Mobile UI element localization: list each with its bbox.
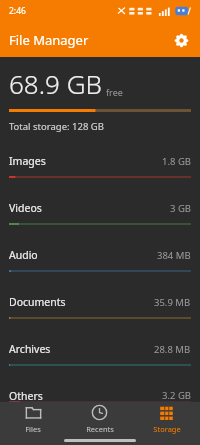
staticText: Audio <box>9 248 38 262</box>
staticText: 35.9 MB <box>154 296 191 309</box>
button[interactable]: Others <box>0 378 200 402</box>
staticText: 1.8 GB <box>162 155 191 168</box>
button[interactable]: Images <box>0 143 200 190</box>
staticText: Storage <box>153 424 181 434</box>
button[interactable]: Recents <box>66 402 133 435</box>
staticText: Documents <box>9 295 66 309</box>
staticText: Others <box>9 389 43 402</box>
staticText: Recents <box>86 424 114 434</box>
staticText: 3.2 GB <box>162 389 191 402</box>
staticText: Archives <box>9 342 51 356</box>
button[interactable]: Storage <box>133 402 200 435</box>
button[interactable]: Archives <box>0 331 200 378</box>
button[interactable]: Settings <box>170 29 192 51</box>
button[interactable]: Videos <box>0 190 200 237</box>
staticText: 68.9 GB <box>9 66 102 101</box>
staticText: Total storage: 128 GB <box>9 120 104 133</box>
staticText: free <box>106 86 123 98</box>
button[interactable]: Audio <box>0 237 200 284</box>
button[interactable]: Documents <box>0 284 200 331</box>
staticText: Files <box>25 424 41 434</box>
staticText: File Manager <box>9 31 89 49</box>
staticText: Videos <box>9 201 42 215</box>
staticText: Images <box>9 154 46 168</box>
staticText: 28.8 MB <box>154 343 191 356</box>
button[interactable]: Files <box>0 402 66 435</box>
staticText: 3 GB <box>170 202 191 215</box>
staticText: 384 MB <box>157 249 191 262</box>
staticText: 2:46 <box>9 5 26 17</box>
